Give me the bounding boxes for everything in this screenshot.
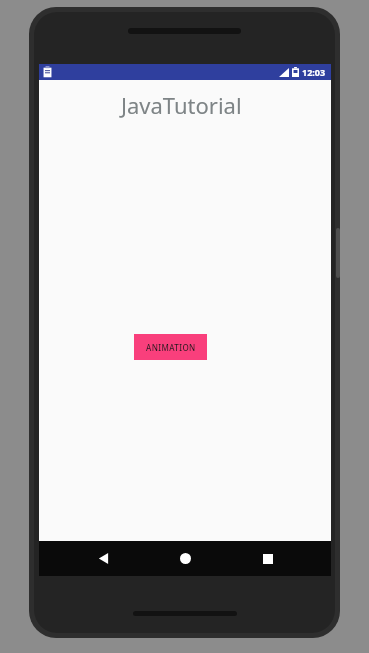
- button[interactable]: Home: [166, 541, 204, 576]
- button[interactable]: ANIMATION: [134, 334, 207, 360]
- staticText: JavaTutorial: [121, 90, 242, 120]
- button[interactable]: Back: [84, 541, 122, 576]
- staticText: 12:03: [302, 66, 326, 78]
- button[interactable]: Recent apps: [249, 541, 287, 576]
- staticText: ANIMATION: [146, 342, 196, 353]
